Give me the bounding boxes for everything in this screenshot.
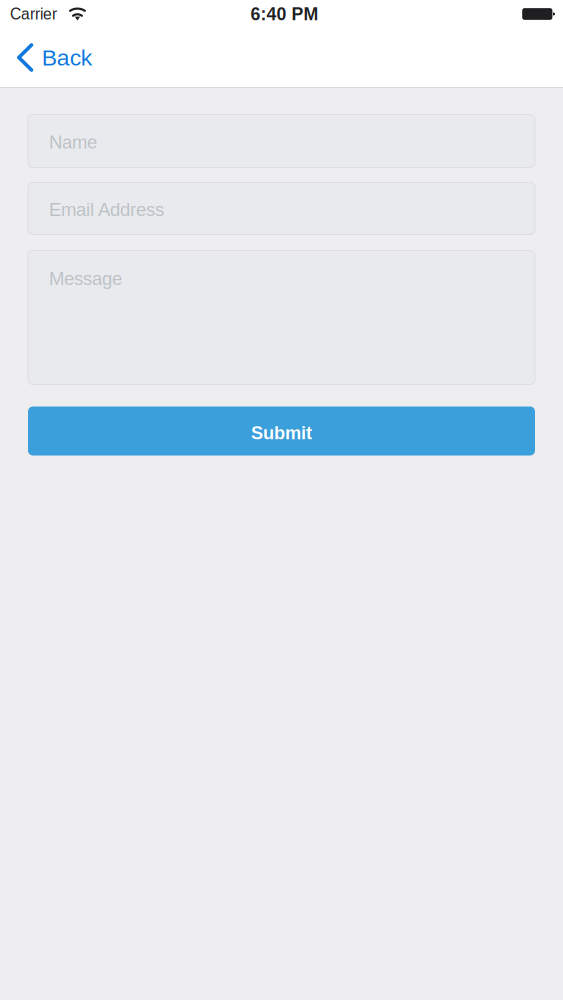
staticText: 6:40 PM	[250, 4, 318, 24]
staticText: Name	[49, 132, 97, 152]
button[interactable]: Submit	[28, 406, 535, 455]
staticText: Back	[42, 45, 92, 70]
button[interactable]: Name	[28, 114, 535, 167]
button[interactable]: Back	[0, 35, 106, 79]
button[interactable]: Email Address	[28, 182, 535, 234]
staticText: Submit	[251, 423, 312, 443]
staticText: Email Address	[49, 199, 164, 220]
staticText: Carrier	[10, 5, 57, 23]
staticText: Message	[49, 268, 122, 289]
